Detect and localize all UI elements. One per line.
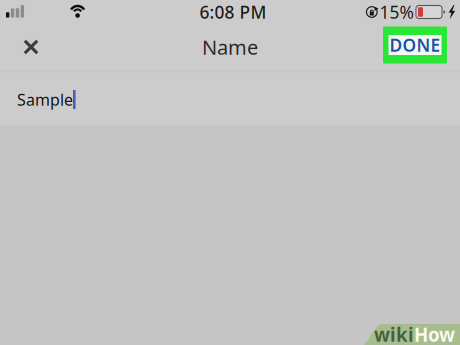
staticText: Name xyxy=(202,34,258,60)
staticText: Sample xyxy=(17,89,73,110)
button[interactable]: DONE xyxy=(383,28,447,65)
staticText: How xyxy=(414,322,455,345)
staticText: wiki xyxy=(374,322,414,345)
staticText: 6:08 PM xyxy=(199,0,266,23)
button[interactable]: Close xyxy=(0,24,62,70)
staticText: DONE xyxy=(389,33,440,56)
staticText: 15% xyxy=(379,0,413,23)
